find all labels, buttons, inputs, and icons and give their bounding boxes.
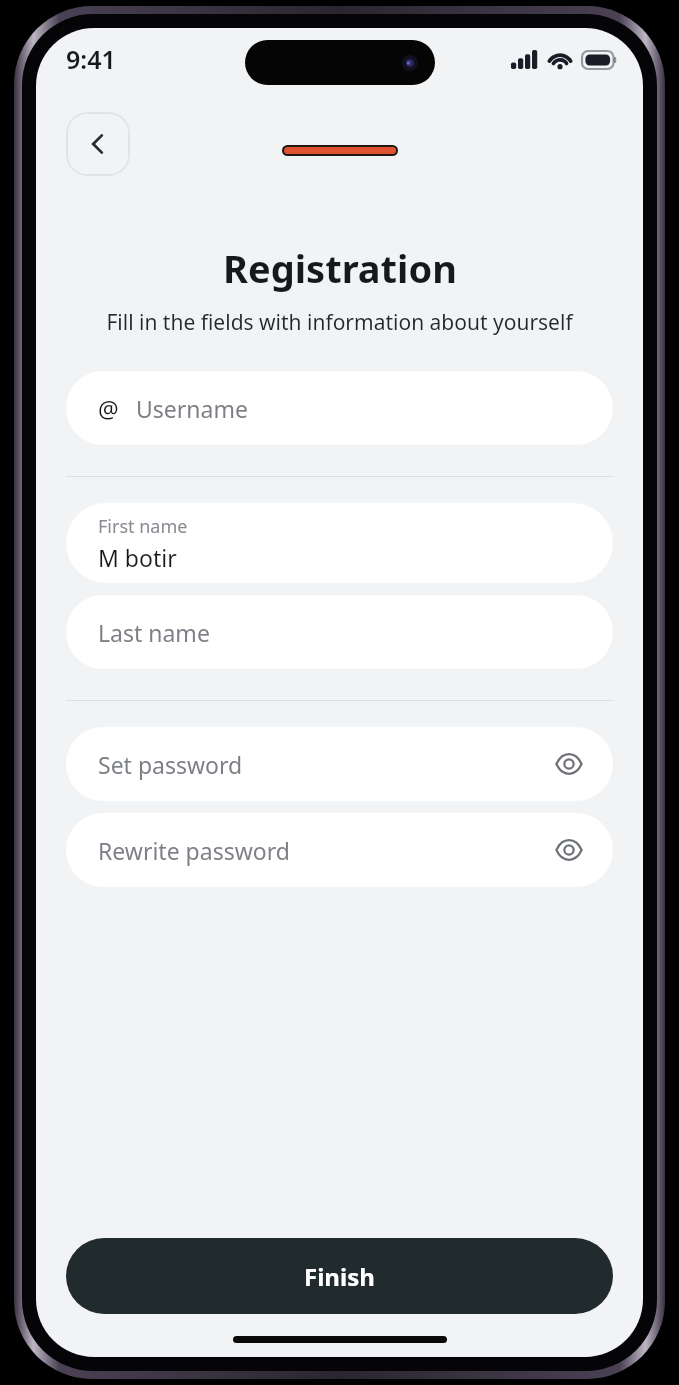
staticText: Username <box>136 393 248 424</box>
staticText: Finish <box>304 1260 375 1293</box>
staticText: M botir <box>98 542 177 573</box>
button[interactable]: Back <box>66 112 130 176</box>
button[interactable]: Set password <box>66 727 613 801</box>
staticText: First name <box>98 514 188 539</box>
staticText: Set password <box>98 749 243 780</box>
staticText: Registration <box>223 242 457 294</box>
button[interactable]: Finish <box>66 1238 613 1314</box>
staticText: Last name <box>98 617 210 648</box>
staticText: 9:41 <box>66 42 116 76</box>
staticText: Rewrite password <box>98 835 290 866</box>
button[interactable]: Show password <box>547 742 591 786</box>
staticText: Fill in the fields with information abou… <box>106 308 573 337</box>
button[interactable]: Last name <box>66 595 613 669</box>
button[interactable]: First name <box>66 503 613 583</box>
staticText: @ <box>98 393 119 424</box>
button[interactable]: Show password <box>547 828 591 872</box>
button[interactable]: Rewrite password <box>66 813 613 887</box>
button[interactable]: @ <box>66 371 613 445</box>
